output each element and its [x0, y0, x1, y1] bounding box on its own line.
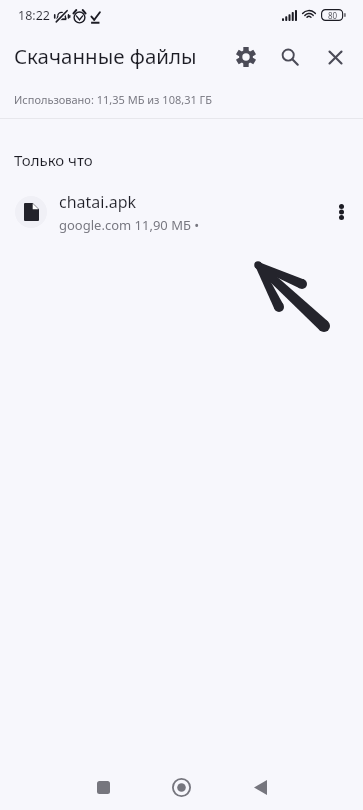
- button[interactable]: Back: [230, 757, 290, 810]
- button[interactable]: More options: [321, 192, 361, 232]
- staticText: google.com 11,90 МБ •: [59, 216, 200, 234]
- button[interactable]: Recents: [73, 757, 133, 810]
- staticText: Скачанные файлы: [14, 42, 197, 70]
- button[interactable]: Close: [315, 37, 355, 77]
- staticText: chatai.apk: [59, 191, 137, 213]
- staticText: Использовано: 11,35 МБ из 108,31 ГБ: [14, 92, 212, 107]
- button[interactable]: chatai.apk: [0, 184, 363, 240]
- button[interactable]: Home: [151, 757, 211, 810]
- button[interactable]: Search: [270, 37, 310, 77]
- button[interactable]: Settings: [226, 37, 266, 77]
- staticText: Только что: [14, 150, 93, 170]
- staticText: 18:22: [18, 7, 50, 24]
- staticText: 80: [328, 10, 338, 21]
